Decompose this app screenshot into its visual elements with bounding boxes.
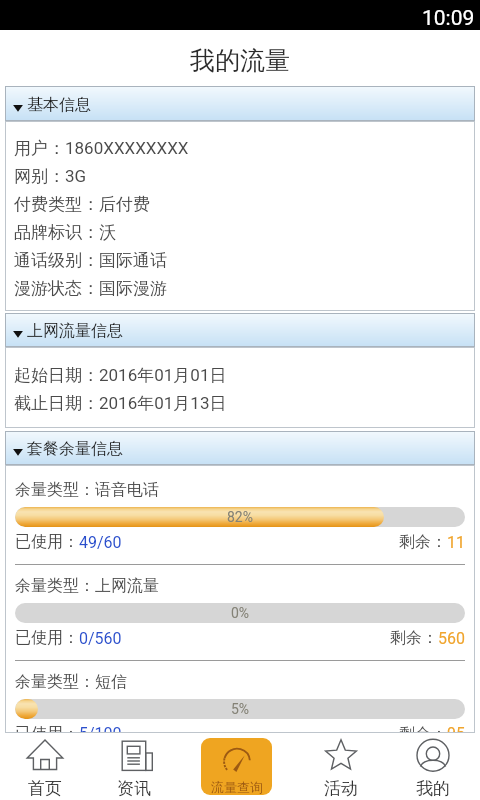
staticText: 0% (231, 605, 250, 621)
staticText: 活动 (324, 778, 358, 799)
staticText: 通话级别：国际通话 (14, 250, 167, 271)
staticText: 82% (227, 509, 253, 525)
button[interactable]: Profile (386, 733, 480, 800)
staticText: 0/560 (79, 629, 122, 648)
staticText: 95 (447, 724, 465, 732)
staticText: 10:09 (422, 6, 475, 31)
staticText: 余量类型：语音电话 (15, 480, 159, 500)
staticText: 基本信息 (27, 95, 91, 115)
button[interactable]: 上网流量信息 (5, 313, 475, 347)
staticText: 付费类型：后付费 (14, 194, 150, 215)
staticText: 余量类型：上网流量 (15, 576, 159, 596)
staticText: 截止日期：2016年01月13日 (14, 393, 227, 414)
staticText: 网别：3G (14, 166, 87, 187)
staticText: 我的 (416, 778, 450, 799)
button[interactable]: Home (0, 733, 90, 800)
staticText: 起始日期：2016年01月01日 (14, 365, 227, 386)
button[interactable]: 套餐余量信息 (5, 431, 475, 465)
staticText: 用户：1860XXXXXXXX (14, 138, 189, 159)
staticText: 剩余： (399, 724, 447, 732)
staticText: 560 (438, 629, 465, 648)
staticText: 已使用： (15, 724, 79, 732)
button[interactable]: News (90, 733, 178, 800)
staticText: 流量查询 (211, 779, 263, 795)
staticText: 余量类型：短信 (15, 672, 127, 692)
staticText: 套餐余量信息 (27, 439, 123, 459)
staticText: 已使用： (15, 532, 79, 552)
staticText: 资讯 (117, 778, 151, 799)
staticText: 剩余： (399, 532, 447, 552)
staticText: 11 (447, 533, 465, 552)
button[interactable]: 流量查询 (178, 733, 295, 800)
staticText: 我的流量 (190, 45, 290, 76)
button[interactable]: 基本信息 (5, 86, 475, 121)
staticText: 剩余： (390, 628, 438, 648)
staticText: 品牌标识：沃 (14, 222, 116, 243)
staticText: 首页 (28, 778, 62, 799)
staticText: 5/100 (79, 724, 122, 732)
button[interactable]: Activities (295, 733, 386, 800)
staticText: 上网流量信息 (27, 321, 123, 341)
staticText: 已使用： (15, 628, 79, 648)
staticText: 5% (231, 701, 250, 717)
staticText: 漫游状态：国际漫游 (14, 278, 167, 299)
staticText: 49/60 (79, 533, 122, 552)
